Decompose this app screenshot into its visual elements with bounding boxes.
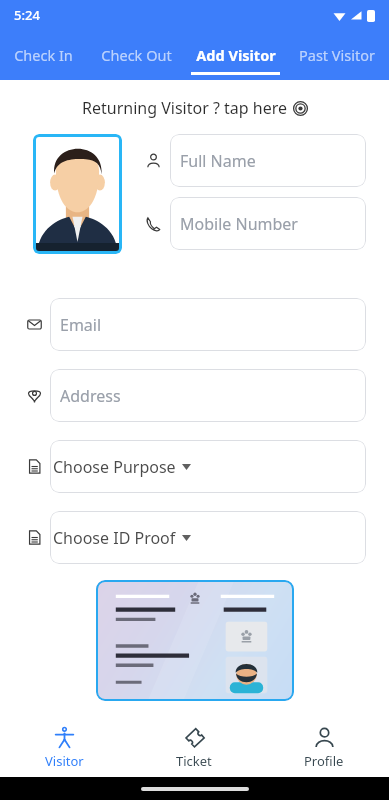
button[interactable]: Past Visitor: [285, 37, 389, 80]
button[interactable]: Check Out: [86, 37, 186, 80]
button[interactable]: Returning Visitor ? tap here: [0, 97, 389, 119]
staticText: Profile: [304, 752, 344, 770]
staticText: Check In: [14, 45, 73, 65]
button[interactable]: Address: [50, 369, 366, 422]
staticText: Choose Purpose: [53, 456, 176, 478]
button[interactable]: Email: [50, 298, 366, 351]
staticText: 5:24: [14, 6, 40, 24]
button[interactable]: ID proof sample: [96, 580, 294, 701]
staticText: Visitor: [45, 752, 84, 770]
staticText: Add Visitor: [196, 45, 276, 65]
button[interactable]: Profile: [259, 720, 389, 777]
staticText: Email: [60, 314, 102, 336]
staticText: Full Name: [180, 150, 256, 172]
button[interactable]: Mobile Number: [170, 197, 366, 250]
button[interactable]: Add Visitor: [186, 37, 285, 80]
button[interactable]: Visitor: [0, 720, 129, 777]
staticText: Returning Visitor ? tap here: [82, 97, 287, 119]
staticText: Ticket: [176, 752, 212, 770]
staticText: Check Out: [101, 45, 172, 65]
button[interactable]: Ticket: [129, 720, 259, 777]
button[interactable]: Full Name: [170, 134, 366, 187]
button[interactable]: Choose ID Proof: [50, 511, 366, 564]
staticText: Mobile Number: [180, 213, 298, 235]
button[interactable]: Check In: [0, 37, 86, 80]
staticText: Past Visitor: [299, 45, 375, 65]
staticText: Choose ID Proof: [53, 527, 176, 549]
button[interactable]: Take visitor photo: [33, 134, 122, 254]
staticText: Address: [60, 385, 121, 407]
button[interactable]: Choose Purpose: [50, 440, 366, 493]
